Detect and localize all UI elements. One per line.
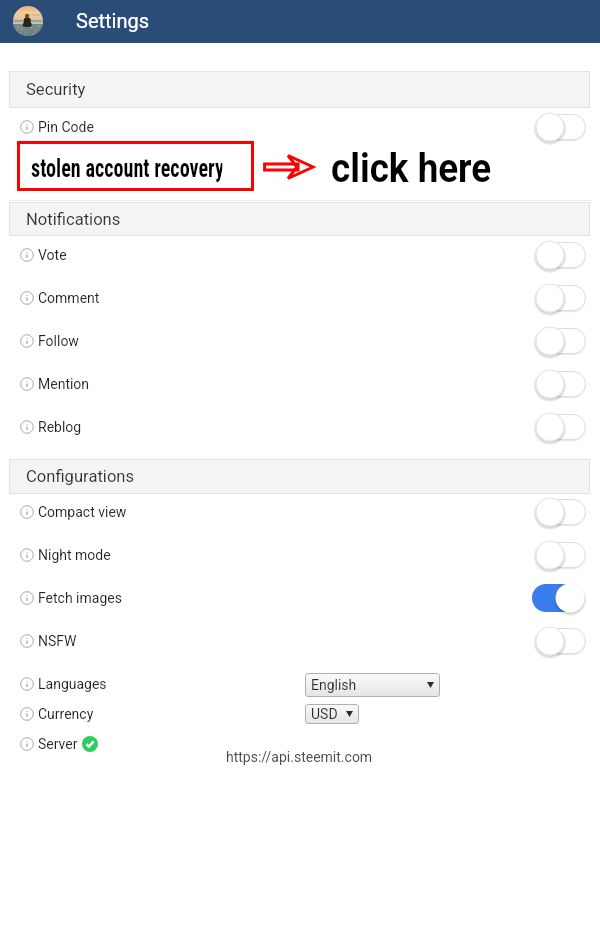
button[interactable]: Switch off xyxy=(532,496,588,528)
button[interactable]: Switch off xyxy=(532,239,588,271)
staticText: Notifications xyxy=(26,210,121,229)
staticText: Night mode xyxy=(38,547,111,563)
button[interactable]: Switch off xyxy=(532,539,588,571)
button[interactable]: Switch off xyxy=(532,625,588,657)
staticText: click here xyxy=(331,145,492,192)
button[interactable]: Configurations xyxy=(9,459,590,494)
staticText: Languages xyxy=(38,676,107,692)
staticText: Currency xyxy=(38,706,94,722)
staticText: USD xyxy=(311,706,338,722)
staticText: Fetch images xyxy=(38,590,122,606)
button[interactable]: Compact view xyxy=(0,494,600,530)
button[interactable]: Switch off xyxy=(532,411,588,443)
button[interactable]: Reblog xyxy=(0,405,600,448)
staticText: Comment xyxy=(38,290,100,306)
button[interactable]: Switch off xyxy=(532,282,588,314)
button[interactable]: English xyxy=(305,673,440,697)
button[interactable]: Switch off xyxy=(532,325,588,357)
button[interactable]: Fetch images xyxy=(0,576,600,619)
button[interactable]: Switch off xyxy=(532,111,588,143)
staticText: Configurations xyxy=(26,467,135,486)
button[interactable]: Night mode xyxy=(0,533,600,576)
button[interactable]: NSFW xyxy=(0,619,600,662)
staticText: Reblog xyxy=(38,419,82,435)
button[interactable]: Profile xyxy=(13,6,43,36)
button[interactable]: Comment xyxy=(0,276,600,319)
button[interactable]: Switch off xyxy=(532,368,588,400)
button[interactable]: Pin Code xyxy=(0,108,600,146)
button[interactable]: Follow xyxy=(0,319,600,362)
staticText: Settings xyxy=(76,9,150,32)
button[interactable]: Server xyxy=(0,729,600,759)
button[interactable]: Currency xyxy=(0,699,600,729)
staticText: NSFW xyxy=(38,633,77,649)
staticText: Mention xyxy=(38,376,90,392)
staticText: Vote xyxy=(38,247,67,263)
button[interactable]: stolen account recovery xyxy=(17,141,254,191)
staticText: https://api.steemit.com xyxy=(226,749,373,765)
staticText: Compact view xyxy=(38,504,127,520)
button[interactable]: Languages xyxy=(0,669,600,699)
button[interactable]: Vote xyxy=(0,236,600,273)
staticText: Server xyxy=(38,736,78,752)
staticText: stolen account recovery xyxy=(31,154,222,183)
button[interactable]: Mention xyxy=(0,362,600,405)
staticText: Security xyxy=(26,80,86,99)
button[interactable]: Notifications xyxy=(9,202,590,236)
button[interactable]: Security xyxy=(9,71,590,108)
button[interactable]: Switch on xyxy=(532,582,588,614)
button[interactable]: USD xyxy=(305,704,359,724)
staticText: Pin Code xyxy=(38,119,94,135)
staticText: Follow xyxy=(38,333,79,349)
staticText: English xyxy=(311,677,357,693)
